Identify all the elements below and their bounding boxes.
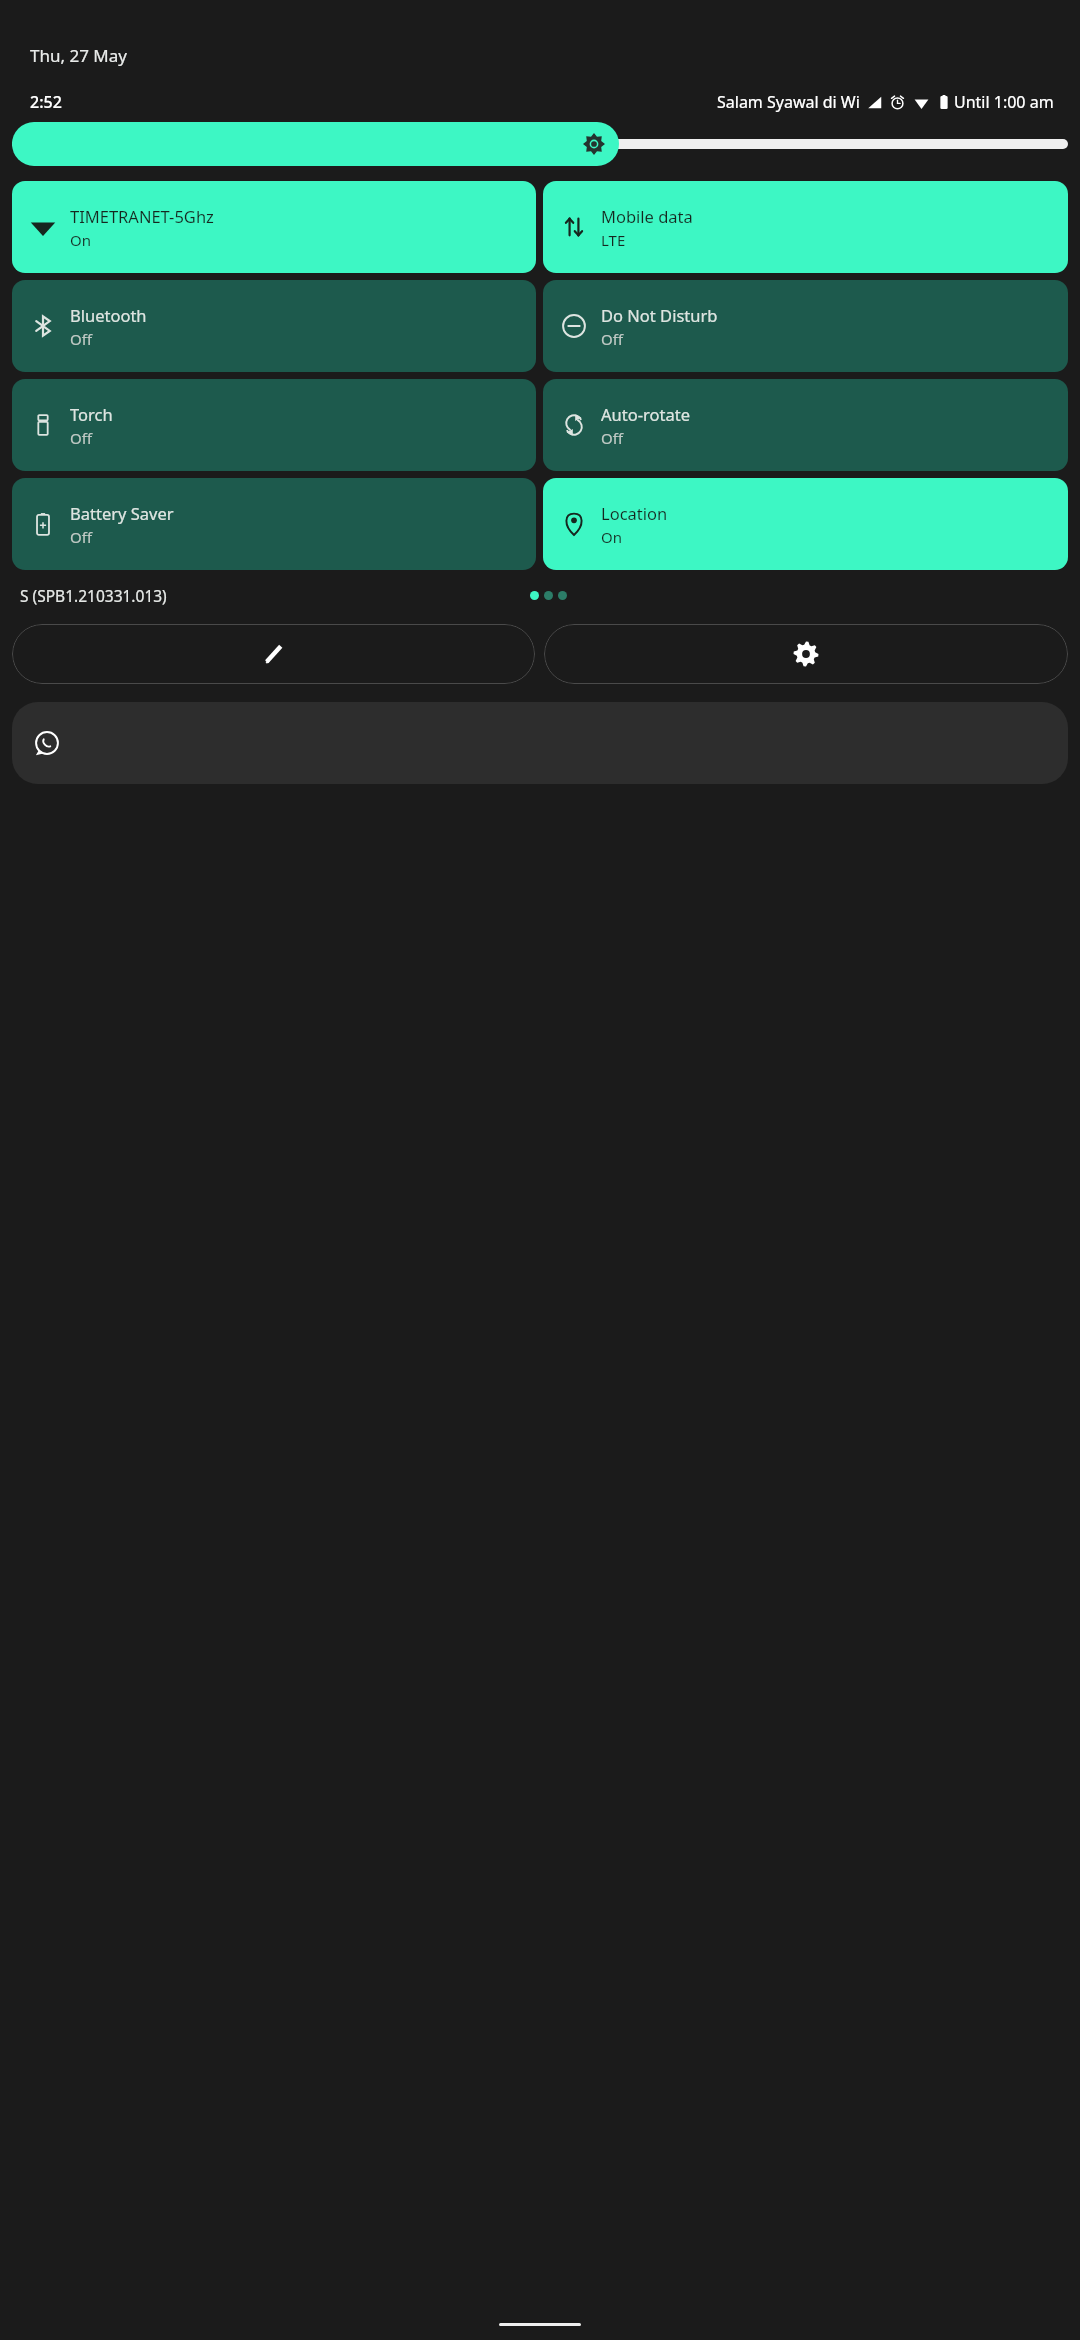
- staticText: On: [601, 527, 622, 547]
- staticText: Torch: [70, 403, 113, 425]
- staticText: Auto-rotate: [601, 403, 690, 425]
- button[interactable]: Brightness: [12, 122, 1068, 166]
- staticText: S (SPB1.210331.013): [20, 585, 167, 606]
- staticText: Off: [70, 428, 93, 448]
- button[interactable]: Location: [543, 478, 1068, 570]
- staticText: Off: [601, 329, 624, 349]
- button[interactable]: Battery Saver: [12, 478, 536, 570]
- staticText: Off: [70, 527, 93, 547]
- staticText: Do Not Disturb: [601, 304, 718, 326]
- staticText: Until 1:00 am: [954, 91, 1054, 113]
- staticText: On: [70, 230, 91, 250]
- staticText: Mobile data: [601, 205, 693, 227]
- staticText: Off: [601, 428, 624, 448]
- button[interactable]: Torch: [12, 379, 536, 471]
- button[interactable]: Mobile data: [543, 181, 1068, 273]
- staticText: 2:52: [30, 91, 62, 113]
- button[interactable]: TIMETRANET-5Ghz: [12, 181, 536, 273]
- button[interactable]: Auto-rotate: [543, 379, 1068, 471]
- staticText: Battery Saver: [70, 502, 174, 524]
- staticText: Off: [70, 329, 93, 349]
- staticText: Salam Syawal di Wi: [717, 91, 860, 113]
- staticText: Bluetooth: [70, 304, 147, 326]
- other: WhatsApp: [34, 730, 60, 756]
- button[interactable]: Bluetooth: [12, 280, 536, 372]
- button[interactable]: WhatsApp: [12, 702, 1068, 784]
- staticText: TIMETRANET-5Ghz: [70, 205, 214, 227]
- button[interactable]: Settings: [544, 624, 1068, 684]
- button[interactable]: Edit: [12, 624, 535, 684]
- button[interactable]: Do Not Disturb: [543, 280, 1068, 372]
- staticText: LTE: [601, 230, 626, 250]
- staticText: Thu, 27 May: [30, 44, 127, 67]
- staticText: Location: [601, 502, 668, 524]
